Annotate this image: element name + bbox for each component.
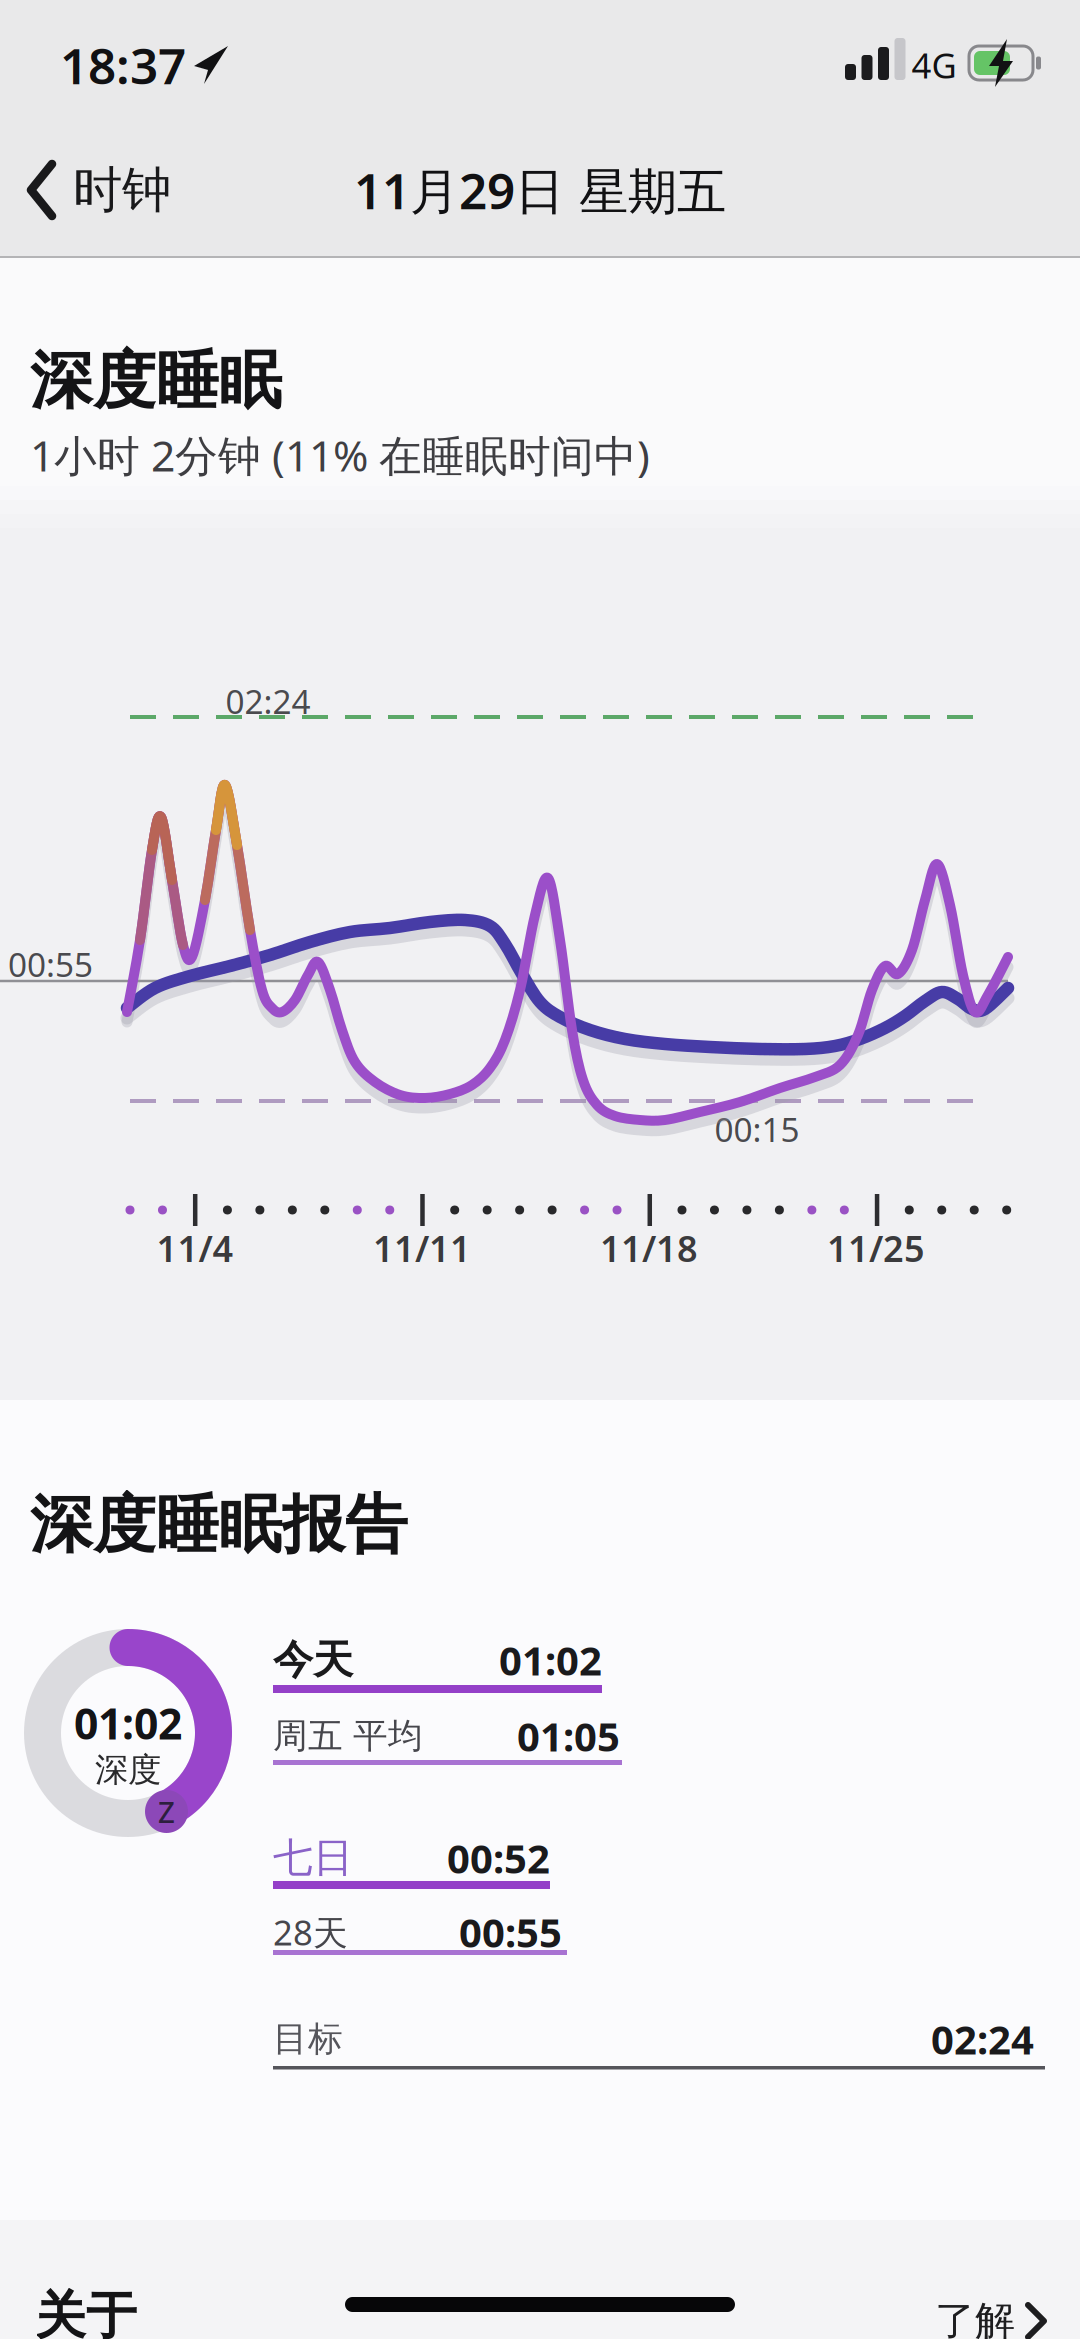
staticText: 28天 (273, 1909, 348, 1955)
staticText: 深度 (95, 1749, 161, 1790)
staticText: 02:24 (931, 2012, 1034, 2065)
staticText: 周五 平均 (273, 1715, 423, 1757)
staticText: 01:02 (499, 1633, 602, 1686)
staticText: 七日 (273, 1833, 353, 1882)
staticText: 11月29日 星期五 (354, 157, 726, 223)
button[interactable]: 28天 (273, 1912, 573, 1960)
staticText: 关于 (35, 2285, 137, 2339)
staticText: 深度睡眠 (30, 342, 282, 419)
staticText: 00:55 (8, 942, 93, 986)
staticText: 11/18 (600, 1224, 698, 1272)
staticText: 00:15 (714, 1107, 799, 1151)
button[interactable]: 周五 平均 (273, 1716, 628, 1768)
button[interactable]: 了解 (935, 2291, 1080, 2339)
staticText: 今天 (273, 1635, 353, 1684)
staticText: Z (158, 1792, 175, 1831)
staticText: 了解 (935, 2296, 1015, 2339)
staticText: 11/4 (156, 1224, 233, 1272)
button[interactable]: 七日 (273, 1838, 558, 1892)
staticText: 00:52 (447, 1831, 550, 1884)
button[interactable]: 今天 (273, 1640, 613, 1696)
button[interactable]: 返回时钟 (26, 150, 246, 230)
staticText: 00:55 (459, 1905, 562, 1958)
staticText: 01:05 (517, 1709, 620, 1762)
staticText: 深度睡眠报告 (30, 1486, 408, 1563)
staticText: 02:24 (225, 679, 310, 723)
staticText: 11/11 (373, 1224, 471, 1272)
staticText: 1小时 2分钟 (11% 在睡眠时间中) (30, 427, 650, 483)
staticText: 11/25 (827, 1224, 925, 1272)
staticText: 时钟 (73, 160, 171, 220)
staticText: 18:37 (60, 32, 186, 98)
staticText: 01:02 (74, 1695, 182, 1751)
staticText: 4G (911, 42, 956, 88)
staticText: 目标 (273, 2018, 343, 2060)
button[interactable]: 目标 (273, 2019, 1045, 2073)
